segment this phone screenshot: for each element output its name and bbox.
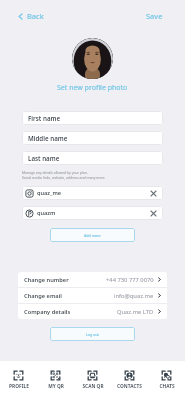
staticText: CHATS: [159, 383, 175, 390]
staticText: +44 730 777 0070: [106, 276, 154, 284]
button[interactable]: Add more: [50, 228, 135, 242]
staticText: Manage any details allowed by your plan.: [22, 170, 88, 175]
staticText: Company details: [24, 308, 71, 316]
staticText: First name: [28, 114, 61, 122]
button[interactable]: Remove: [149, 189, 158, 198]
staticText: SCAN QR: [82, 383, 104, 390]
staticText: Change email: [24, 292, 62, 300]
button[interactable]: Profile photo: [72, 38, 113, 79]
staticText: Back: [27, 11, 44, 21]
staticText: quazm: [37, 209, 56, 217]
button[interactable]: Back: [14, 7, 47, 25]
staticText: info@quaz.me: [114, 292, 154, 300]
button[interactable]: SCAN QR: [74, 361, 111, 398]
button[interactable]: Company details: [18, 304, 167, 319]
staticText: quaz_me: [37, 189, 62, 197]
staticText: PROFILE: [9, 383, 29, 390]
staticText: Quaz.me LTD: [117, 308, 154, 316]
staticText: Social media links, website, address and…: [22, 175, 105, 180]
staticText: Middle name: [28, 134, 68, 142]
staticText: Add more: [84, 233, 101, 238]
staticText: MY QR: [48, 383, 64, 390]
button[interactable]: Save: [143, 7, 166, 25]
button[interactable]: Remove: [149, 209, 158, 218]
button[interactable]: MY QR: [37, 361, 74, 398]
staticText: Last name: [28, 154, 60, 162]
button[interactable]: Set new profile photo: [56, 82, 129, 94]
button[interactable]: First name: [22, 111, 163, 125]
staticText: Change number: [24, 276, 69, 284]
button[interactable]: Middle name: [22, 131, 163, 145]
staticText: CONTACTS: [117, 383, 142, 390]
button[interactable]: quaz_me: [22, 186, 163, 200]
staticText: Set new profile photo: [57, 83, 128, 93]
button[interactable]: Change number: [18, 272, 167, 287]
button[interactable]: quazm: [22, 206, 163, 220]
staticText: Save: [146, 11, 163, 21]
staticText: Log out: [86, 332, 99, 337]
button[interactable]: Last name: [22, 151, 163, 165]
button[interactable]: CONTACTS: [111, 361, 148, 398]
button[interactable]: CHATS: [148, 361, 185, 398]
button[interactable]: Change email: [18, 288, 167, 303]
button[interactable]: Log out: [50, 327, 135, 341]
button[interactable]: PROFILE: [0, 361, 37, 398]
